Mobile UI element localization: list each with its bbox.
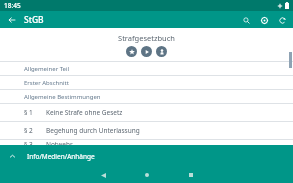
staticText: Erster Abschnitt: [24, 79, 69, 87]
staticText: Allgemeiner Teil: [24, 65, 70, 73]
button[interactable]: Refresh: [275, 13, 289, 27]
button[interactable]: Back: [95, 167, 111, 183]
button[interactable]: Back: [5, 13, 19, 27]
staticText: § 3: [24, 140, 46, 145]
button[interactable]: Recents: [183, 167, 199, 183]
staticText: § 2: [24, 126, 46, 135]
button[interactable]: Favorite: [126, 46, 137, 57]
button[interactable]: Settings: [257, 13, 271, 27]
button[interactable]: Info/Medien/Anhänge: [0, 145, 293, 167]
button[interactable]: § 3: [0, 140, 293, 145]
staticText: Allgemeine Bestimmungen: [24, 93, 101, 101]
staticText: Keine Strafe ohne Gesetz: [46, 108, 123, 117]
staticText: StGB: [24, 14, 44, 26]
button[interactable]: Search: [239, 13, 253, 27]
button[interactable]: Allgemeine Bestimmungen: [0, 90, 293, 103]
staticText: 18:45: [4, 1, 21, 10]
button[interactable]: Play: [141, 46, 152, 57]
button[interactable]: § 1: [0, 104, 293, 121]
button[interactable]: Erster Abschnitt: [0, 76, 293, 89]
staticText: Begehung durch Unterlassung: [46, 126, 140, 135]
button[interactable]: Allgemeiner Teil: [0, 62, 293, 75]
button[interactable]: Home: [139, 167, 155, 183]
staticText: Strafgesetzbuch: [0, 33, 293, 43]
button[interactable]: § 2: [0, 122, 293, 139]
staticText: Notwehr: [46, 140, 73, 145]
button[interactable]: Info: [156, 46, 167, 57]
staticText: § 1: [24, 108, 46, 117]
staticText: Info/Medien/Anhänge: [27, 152, 95, 161]
